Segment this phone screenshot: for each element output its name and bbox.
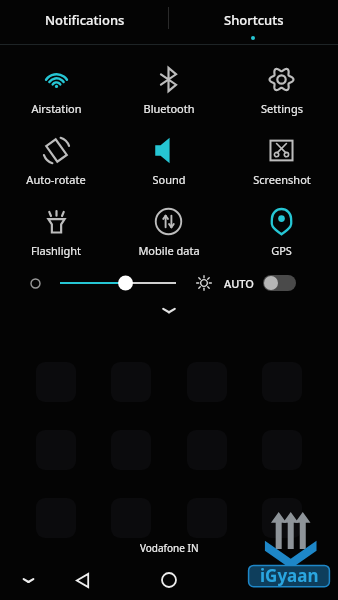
staticText: Airstation <box>31 101 82 116</box>
staticText: Auto-rotate <box>26 172 86 187</box>
staticText: iGyaan <box>260 564 319 587</box>
button[interactable]: Expand <box>152 296 186 324</box>
staticText: Bluetooth <box>143 101 195 116</box>
staticText: AUTO <box>224 276 254 291</box>
staticText: Shortcuts <box>224 11 284 29</box>
button[interactable]: Auto brightness toggle <box>263 275 296 291</box>
button[interactable]: Settings <box>225 59 338 118</box>
button[interactable]: Back <box>62 560 102 600</box>
button[interactable]: Collapse <box>8 560 48 600</box>
button[interactable]: Auto-rotate <box>0 130 112 189</box>
button[interactable]: Shortcuts <box>169 0 338 45</box>
button[interactable]: Mobile data <box>112 201 225 260</box>
staticText: GPS <box>271 243 292 258</box>
staticText: Screenshot <box>253 172 311 187</box>
button[interactable] <box>60 271 176 295</box>
button[interactable]: Bluetooth <box>112 59 225 118</box>
button[interactable]: GPS <box>225 201 338 260</box>
button[interactable]: Sound <box>112 130 225 189</box>
staticText: Vodafone IN <box>140 541 199 555</box>
button[interactable]: Screenshot <box>225 130 338 189</box>
staticText: Notifications <box>45 11 125 29</box>
button[interactable]: Home <box>149 560 189 600</box>
staticText: Mobile data <box>138 243 200 258</box>
staticText: Flashlight <box>31 243 81 258</box>
button[interactable]: Flashlight <box>0 201 112 260</box>
button[interactable]: Notifications <box>0 0 169 45</box>
staticText: Settings <box>261 101 303 116</box>
staticText: Sound <box>152 172 186 187</box>
button[interactable]: Airstation <box>0 59 112 118</box>
